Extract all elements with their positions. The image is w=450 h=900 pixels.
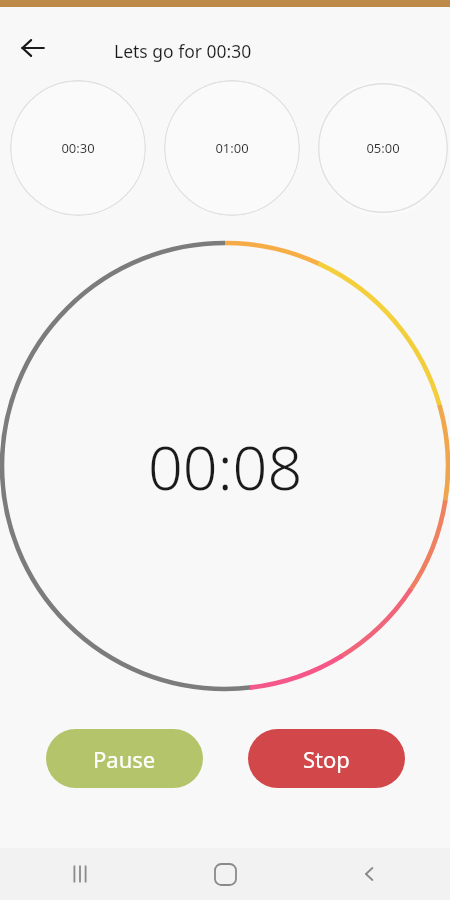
button[interactable]: Back xyxy=(12,27,54,69)
staticText: 05:00 xyxy=(366,139,400,157)
button[interactable]: Home xyxy=(201,850,249,898)
staticText: 00:30 xyxy=(61,139,95,157)
staticText: 00:08 xyxy=(148,425,303,508)
staticText: Pause xyxy=(93,744,156,774)
button[interactable]: 01:00 xyxy=(164,80,300,216)
button[interactable]: Stop xyxy=(248,729,405,788)
staticText: Stop xyxy=(303,744,350,774)
button[interactable]: 05:00 xyxy=(318,80,448,216)
button[interactable]: Back xyxy=(346,850,394,898)
button[interactable]: Pause xyxy=(46,729,203,788)
staticText: Lets go for 00:30 xyxy=(114,39,252,63)
staticText: 01:00 xyxy=(215,139,249,157)
button[interactable]: 00:30 xyxy=(10,80,146,216)
button[interactable]: Recents xyxy=(56,850,104,898)
